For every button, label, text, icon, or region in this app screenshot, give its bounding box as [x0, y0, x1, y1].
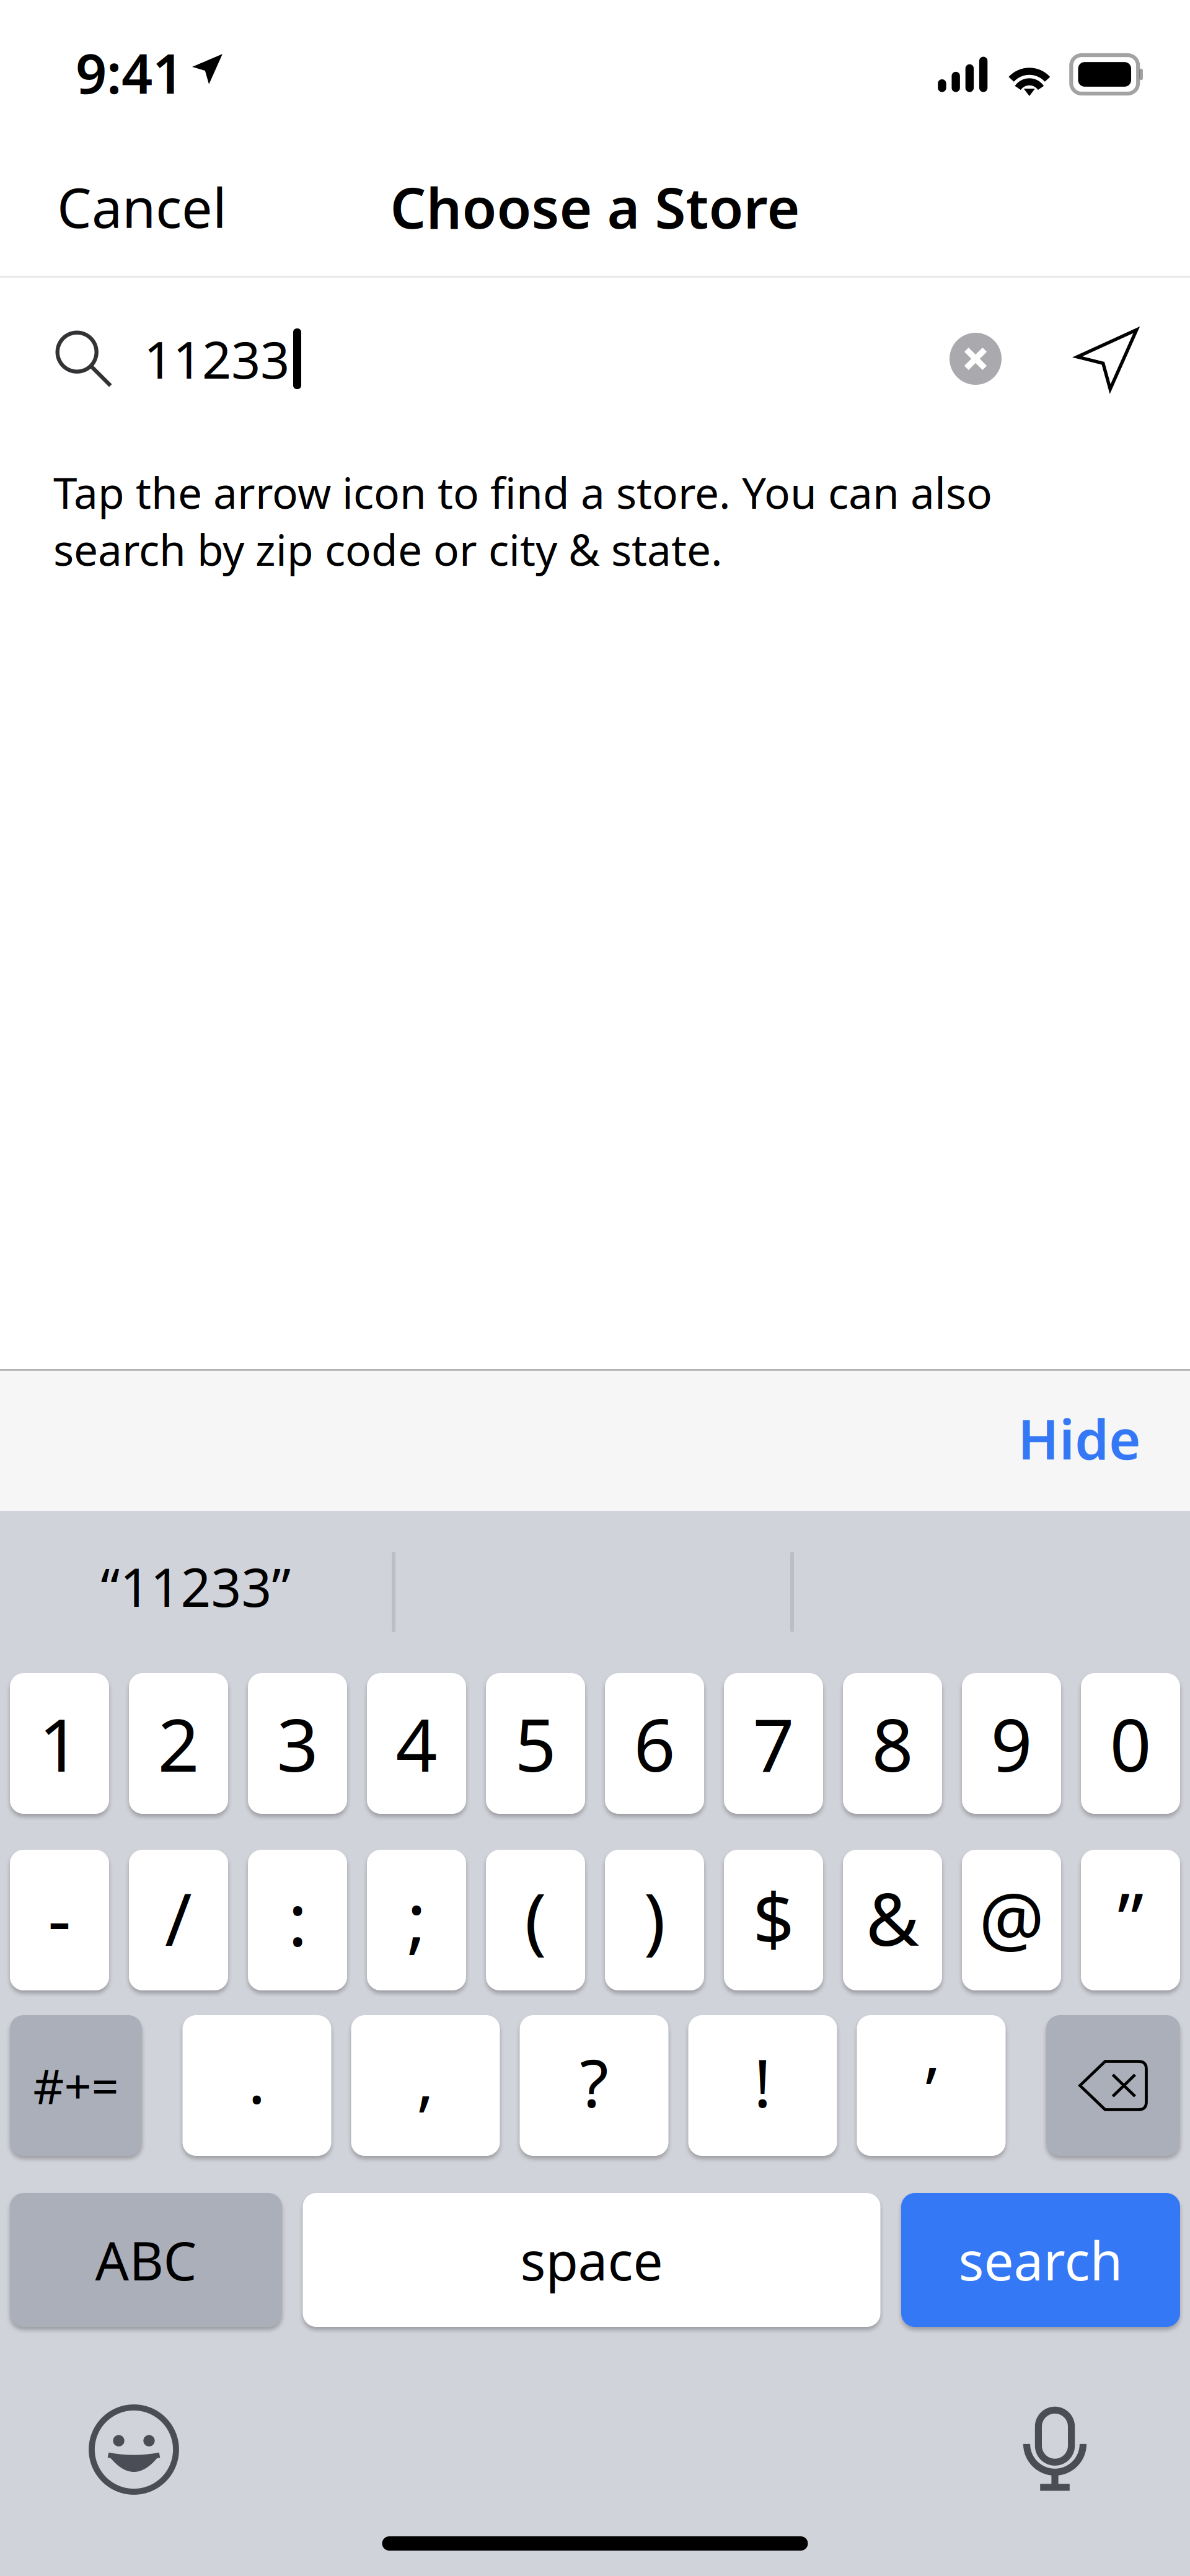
button[interactable]: ;: [367, 1850, 466, 1990]
staticText: ABC: [95, 2225, 197, 2295]
button[interactable]: 1: [10, 1673, 109, 1814]
button[interactable]: &: [843, 1850, 942, 1990]
button[interactable]: @: [962, 1850, 1061, 1990]
staticText: #+=: [33, 2054, 119, 2117]
staticText: (: [525, 1869, 546, 1966]
staticText: /: [165, 1869, 192, 1966]
button[interactable]: Clear text: [950, 333, 1002, 385]
button[interactable]: #+=: [10, 2015, 142, 2156]
staticText: :: [288, 1869, 307, 1966]
staticText: 2: [158, 1695, 199, 1792]
button[interactable]: ,: [351, 2015, 500, 2156]
button[interactable]: “11233”: [0, 1511, 392, 1673]
staticText: ?: [580, 2038, 608, 2126]
button[interactable]: Use current location: [1002, 327, 1139, 391]
button[interactable]: 8: [843, 1673, 942, 1814]
button[interactable]: $: [724, 1850, 823, 1990]
staticText: 4: [396, 1695, 437, 1792]
button[interactable]: Delete: [1046, 2015, 1180, 2156]
button[interactable]: -: [10, 1850, 109, 1990]
button[interactable]: 9: [962, 1673, 1061, 1814]
button[interactable]: ): [605, 1850, 704, 1990]
staticText: &: [866, 1869, 919, 1966]
button[interactable]: /: [129, 1850, 228, 1990]
staticText: Tap the arrow icon to find a store. You …: [53, 464, 992, 578]
staticText: ,: [416, 2034, 434, 2122]
staticText: $: [753, 1869, 794, 1966]
button[interactable]: search: [901, 2193, 1180, 2327]
staticText: .: [248, 2034, 266, 2122]
staticText: 9: [991, 1695, 1032, 1792]
staticText: “11233”: [101, 1551, 291, 1621]
button[interactable]: :: [248, 1850, 347, 1990]
button[interactable]: ?: [520, 2015, 668, 2156]
staticText: space: [520, 2225, 663, 2295]
button[interactable]: 0: [1081, 1673, 1180, 1814]
staticText: 0: [1110, 1695, 1151, 1792]
button[interactable]: 6: [605, 1673, 704, 1814]
staticText: ;: [407, 1869, 426, 1966]
staticText: 5: [515, 1695, 556, 1792]
staticText: Hide: [1018, 1402, 1140, 1475]
button[interactable]: ”: [1081, 1850, 1180, 1990]
staticText: 7: [753, 1695, 794, 1792]
button[interactable]: !: [688, 2015, 837, 2156]
button[interactable]: ’: [857, 2015, 1006, 2156]
button[interactable]: Dictation: [1011, 2406, 1098, 2493]
staticText: 9:41: [76, 36, 183, 109]
button[interactable]: ABC: [10, 2193, 282, 2327]
button[interactable]: 5: [486, 1673, 585, 1814]
button[interactable]: Emoji: [92, 2407, 176, 2492]
staticText: ): [644, 1869, 665, 1966]
staticText: Cancel: [57, 170, 227, 243]
button[interactable]: space: [303, 2193, 880, 2327]
staticText: search: [959, 2225, 1123, 2295]
staticText: 1: [39, 1695, 80, 1792]
staticText: ’: [925, 2045, 937, 2133]
staticText: 11233: [144, 325, 289, 393]
staticText: 8: [872, 1695, 913, 1792]
button[interactable]: 2: [129, 1673, 228, 1814]
staticText: 3: [277, 1695, 318, 1792]
button[interactable]: .: [183, 2015, 331, 2156]
staticText: @: [979, 1869, 1044, 1966]
staticText: -: [48, 1869, 71, 1966]
button[interactable]: Hide: [968, 1371, 1190, 1511]
button[interactable]: (: [486, 1850, 585, 1990]
staticText: Choose a Store: [390, 169, 800, 244]
button[interactable]: 4: [367, 1673, 466, 1814]
staticText: 6: [634, 1695, 675, 1792]
button[interactable]: 7: [724, 1673, 823, 1814]
button[interactable]: 3: [248, 1673, 347, 1814]
staticText: !: [754, 2038, 772, 2126]
button[interactable]: Cancel: [0, 145, 284, 269]
staticText: ”: [1117, 1869, 1144, 1966]
